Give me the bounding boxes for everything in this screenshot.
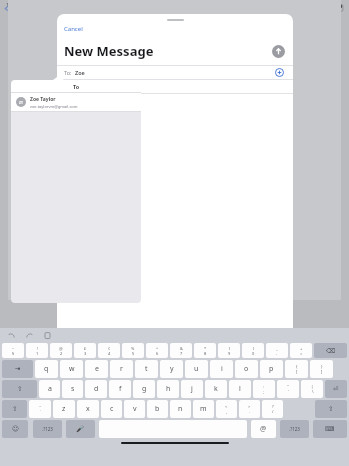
button[interactable]: t [135,360,158,378]
button[interactable]: Send [272,45,285,58]
button[interactable]: % [122,343,144,358]
button[interactable]: Dictate [66,420,95,438]
button[interactable]: o [235,360,258,378]
button[interactable]: l [229,380,251,398]
button[interactable]: } [310,360,333,378]
button[interactable]: g [133,380,155,398]
button[interactable]: To: [57,66,293,79]
button[interactable]: m [193,400,214,418]
staticText: y [170,364,174,374]
button[interactable]: f [109,380,131,398]
staticText: { [296,364,298,369]
button[interactable]: ~ [2,343,24,358]
staticText: i [221,364,223,374]
button[interactable]: _ [266,343,288,358]
button[interactable]: Return [325,380,347,398]
button[interactable]: ZT [16,93,136,111]
button[interactable]: Shift [2,400,27,418]
button[interactable]: n [170,400,191,418]
button[interactable]: s [62,380,83,398]
button[interactable]: | [301,380,323,398]
button[interactable]: Numbers [33,420,62,438]
button[interactable]: e [85,360,108,378]
button[interactable]: v [124,400,145,418]
staticText: 8 [204,351,207,356]
staticText: s [71,384,75,394]
button[interactable]: ¢ [98,343,120,358]
button[interactable]: " [277,380,299,398]
staticText: ⇧ [17,385,23,393]
staticText: m [200,404,207,414]
button[interactable]: ) [242,343,264,358]
button[interactable]: undo [7,331,16,340]
button[interactable]: < [216,400,237,418]
button[interactable]: q [35,360,58,378]
button[interactable]: c [101,400,122,418]
button[interactable]: r [110,360,133,378]
button[interactable]: * [194,343,216,358]
button[interactable]: ~ [29,400,51,418]
button[interactable]: paste [43,331,52,340]
button[interactable]: Compose [334,3,344,13]
button[interactable]: ! [26,343,48,358]
staticText: Zoe [75,69,85,76]
staticText: 3 [84,351,87,356]
staticText: .?123 [289,426,300,432]
button[interactable]: > [239,400,260,418]
button[interactable]: ? [262,400,283,418]
button[interactable]: £ [74,343,96,358]
staticText: .?123 [42,426,53,432]
button[interactable]: ^ [146,343,168,358]
staticText: r [120,364,123,374]
staticText: l [239,384,241,394]
button[interactable]: y [160,360,183,378]
button[interactable]: Cancel [64,25,83,33]
button[interactable]: Add contact [275,68,284,77]
button[interactable]: : [253,380,275,398]
button[interactable]: p [260,360,283,378]
button[interactable]: Numbers [280,420,309,438]
staticText: zoe.taylorvm@gmail.com [30,104,78,109]
button[interactable]: Backspace [314,343,347,358]
staticText: n [178,404,183,414]
staticText: % [131,346,135,351]
button[interactable]: @ [50,343,72,358]
staticText: c [110,404,114,414]
staticText: ' [288,389,289,394]
button[interactable]: i [210,360,233,378]
button[interactable]: h [157,380,179,398]
button[interactable]: Tab [2,360,33,378]
button[interactable]: Inbox [3,5,25,12]
staticText: £ [84,346,87,351]
staticText: x [86,404,90,414]
button[interactable]: + [290,343,312,358]
button[interactable]: a [39,380,60,398]
staticText: f [119,384,122,394]
staticText: @ [59,346,63,351]
staticText: , [226,409,228,414]
staticText: ¢ [108,346,111,351]
button[interactable]: b [147,400,168,418]
button[interactable]: Hide keyboard [313,420,347,438]
button[interactable]: redo [25,331,34,340]
button[interactable]: w [60,360,83,378]
button[interactable]: d [85,380,107,398]
staticText: t [145,364,148,374]
button[interactable]: j [181,380,203,398]
button[interactable]: Shift [315,400,347,418]
button[interactable]: u [185,360,208,378]
button[interactable]: { [285,360,308,378]
button[interactable]: @ [251,420,276,438]
button[interactable]: & [170,343,192,358]
button[interactable]: k [205,380,227,398]
button[interactable]: ( [218,343,240,358]
button[interactable]: Caps lock [2,380,37,398]
button[interactable]: x [77,400,99,418]
button[interactable]: Emoji [2,420,28,438]
staticText: ZT [19,100,23,105]
staticText: p [269,364,274,374]
button[interactable]: z [53,400,75,418]
